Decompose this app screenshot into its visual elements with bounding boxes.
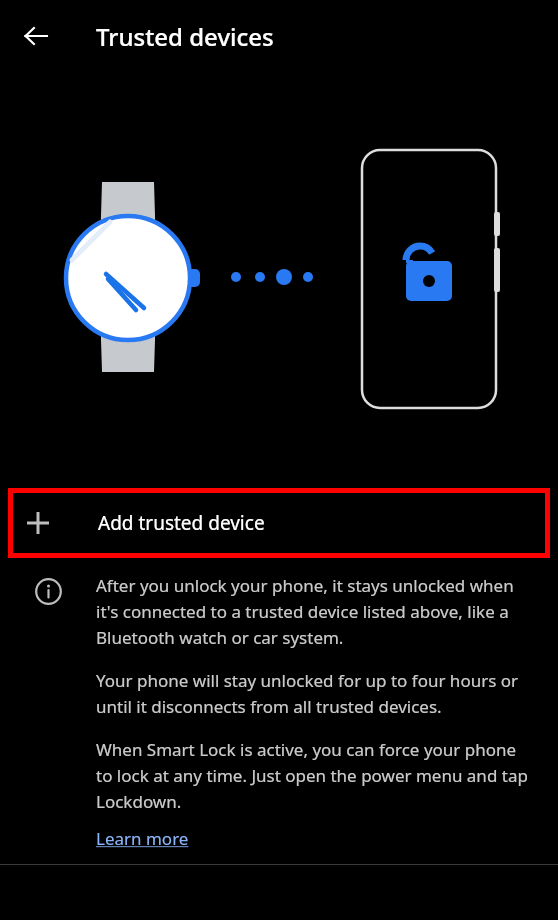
button[interactable]: Back <box>12 12 60 60</box>
button[interactable]: Learn more <box>96 827 189 850</box>
staticText: When Smart Lock is active, you can force… <box>96 738 534 813</box>
staticText: Trusted devices <box>96 20 274 53</box>
staticText: Learn more <box>96 827 189 850</box>
staticText: Your phone will stay unlocked for up to … <box>96 669 534 718</box>
staticText: Add trusted device <box>98 510 265 536</box>
staticText: After you unlock your phone, it stays un… <box>96 574 534 649</box>
button[interactable]: Add trusted device <box>8 488 550 558</box>
